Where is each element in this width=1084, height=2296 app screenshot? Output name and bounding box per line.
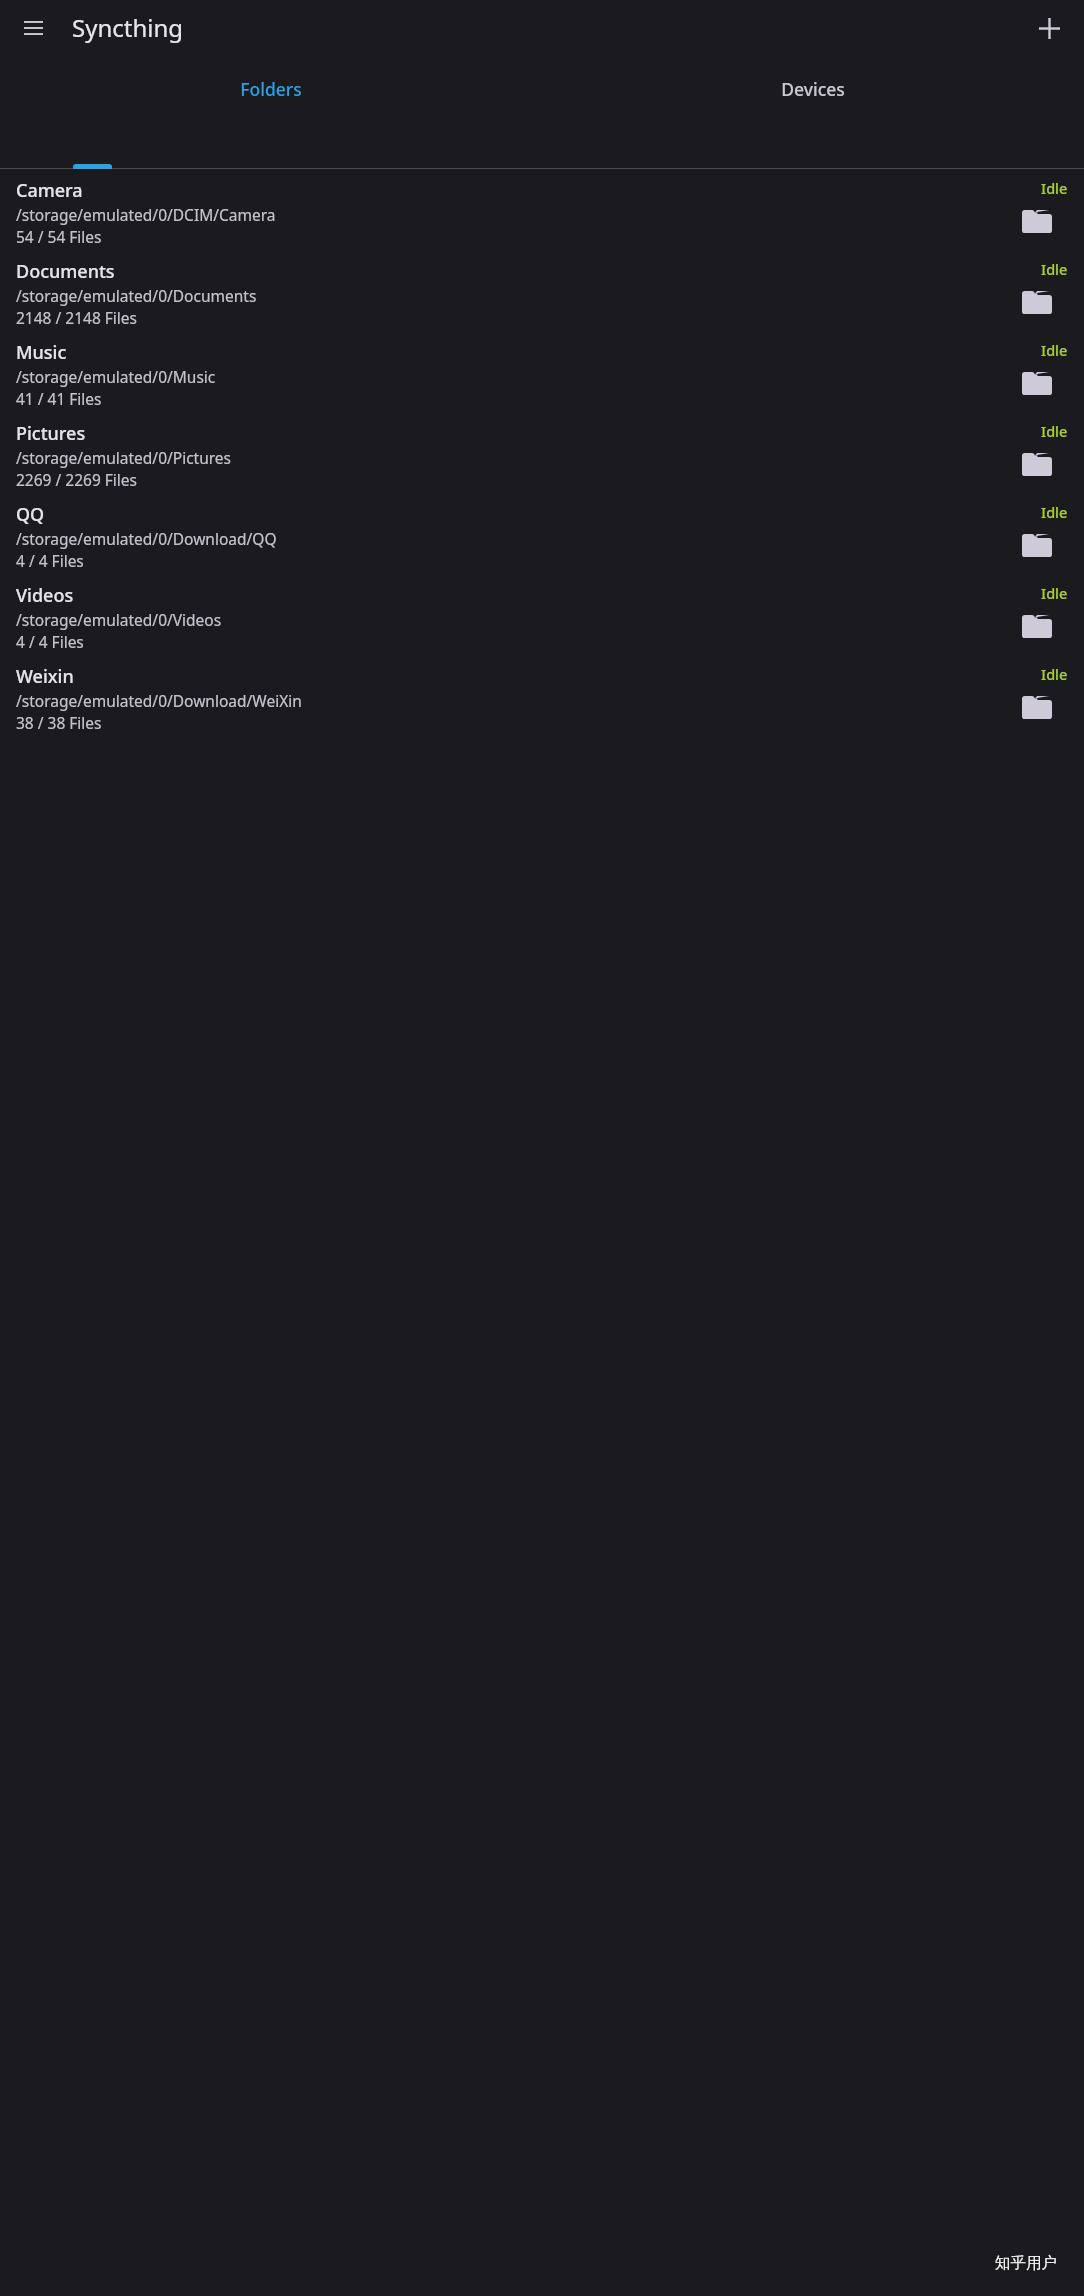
staticText: 54 / 54 Files	[16, 226, 102, 247]
staticText: Folders	[240, 77, 302, 101]
staticText: Syncthing	[72, 11, 184, 44]
staticText: Idle	[1041, 421, 1068, 441]
staticText: Documents	[16, 259, 115, 284]
staticText: Idle	[1041, 340, 1068, 360]
staticText: /storage/emulated/0/Download/QQ	[16, 528, 277, 549]
staticText: /storage/emulated/0/Download/WeiXin	[16, 690, 302, 711]
staticText: /storage/emulated/0/DCIM/Camera	[16, 204, 276, 225]
button[interactable]: Documents	[0, 251, 1084, 332]
staticText: 2269 / 2269 Files	[16, 469, 137, 490]
staticText: /storage/emulated/0/Music	[16, 366, 216, 387]
staticText: 38 / 38 Files	[16, 712, 102, 733]
button[interactable]: Videos	[0, 575, 1084, 656]
staticText: QQ	[16, 502, 45, 527]
button[interactable]: QQ	[0, 494, 1084, 575]
staticText: 知乎用户	[995, 2253, 1057, 2273]
button[interactable]: Folders	[0, 55, 542, 165]
button[interactable]: Add folder	[1026, 5, 1072, 51]
staticText: Idle	[1041, 664, 1068, 684]
staticText: Idle	[1041, 178, 1068, 198]
button[interactable]: Devices	[542, 55, 1084, 165]
staticText: 4 / 4 Files	[16, 631, 84, 652]
button[interactable]: Pictures	[0, 413, 1084, 494]
button[interactable]: Music	[0, 332, 1084, 413]
staticText: Music	[16, 340, 67, 365]
staticText: Pictures	[16, 421, 86, 446]
staticText: Idle	[1041, 583, 1068, 603]
staticText: Idle	[1041, 502, 1068, 522]
staticText: /storage/emulated/0/Videos	[16, 609, 222, 630]
staticText: Weixin	[16, 664, 74, 689]
button[interactable]: Camera	[0, 170, 1084, 251]
staticText: Idle	[1041, 259, 1068, 279]
button[interactable]: Weixin	[0, 656, 1084, 737]
staticText: Camera	[16, 178, 83, 203]
staticText: /storage/emulated/0/Documents	[16, 285, 257, 306]
staticText: 2148 / 2148 Files	[16, 307, 137, 328]
button[interactable]: Open navigation menu	[10, 5, 56, 51]
staticText: 41 / 41 Files	[16, 388, 102, 409]
staticText: Devices	[781, 77, 845, 101]
staticText: /storage/emulated/0/Pictures	[16, 447, 232, 468]
staticText: Videos	[16, 583, 74, 608]
staticText: 4 / 4 Files	[16, 550, 84, 571]
